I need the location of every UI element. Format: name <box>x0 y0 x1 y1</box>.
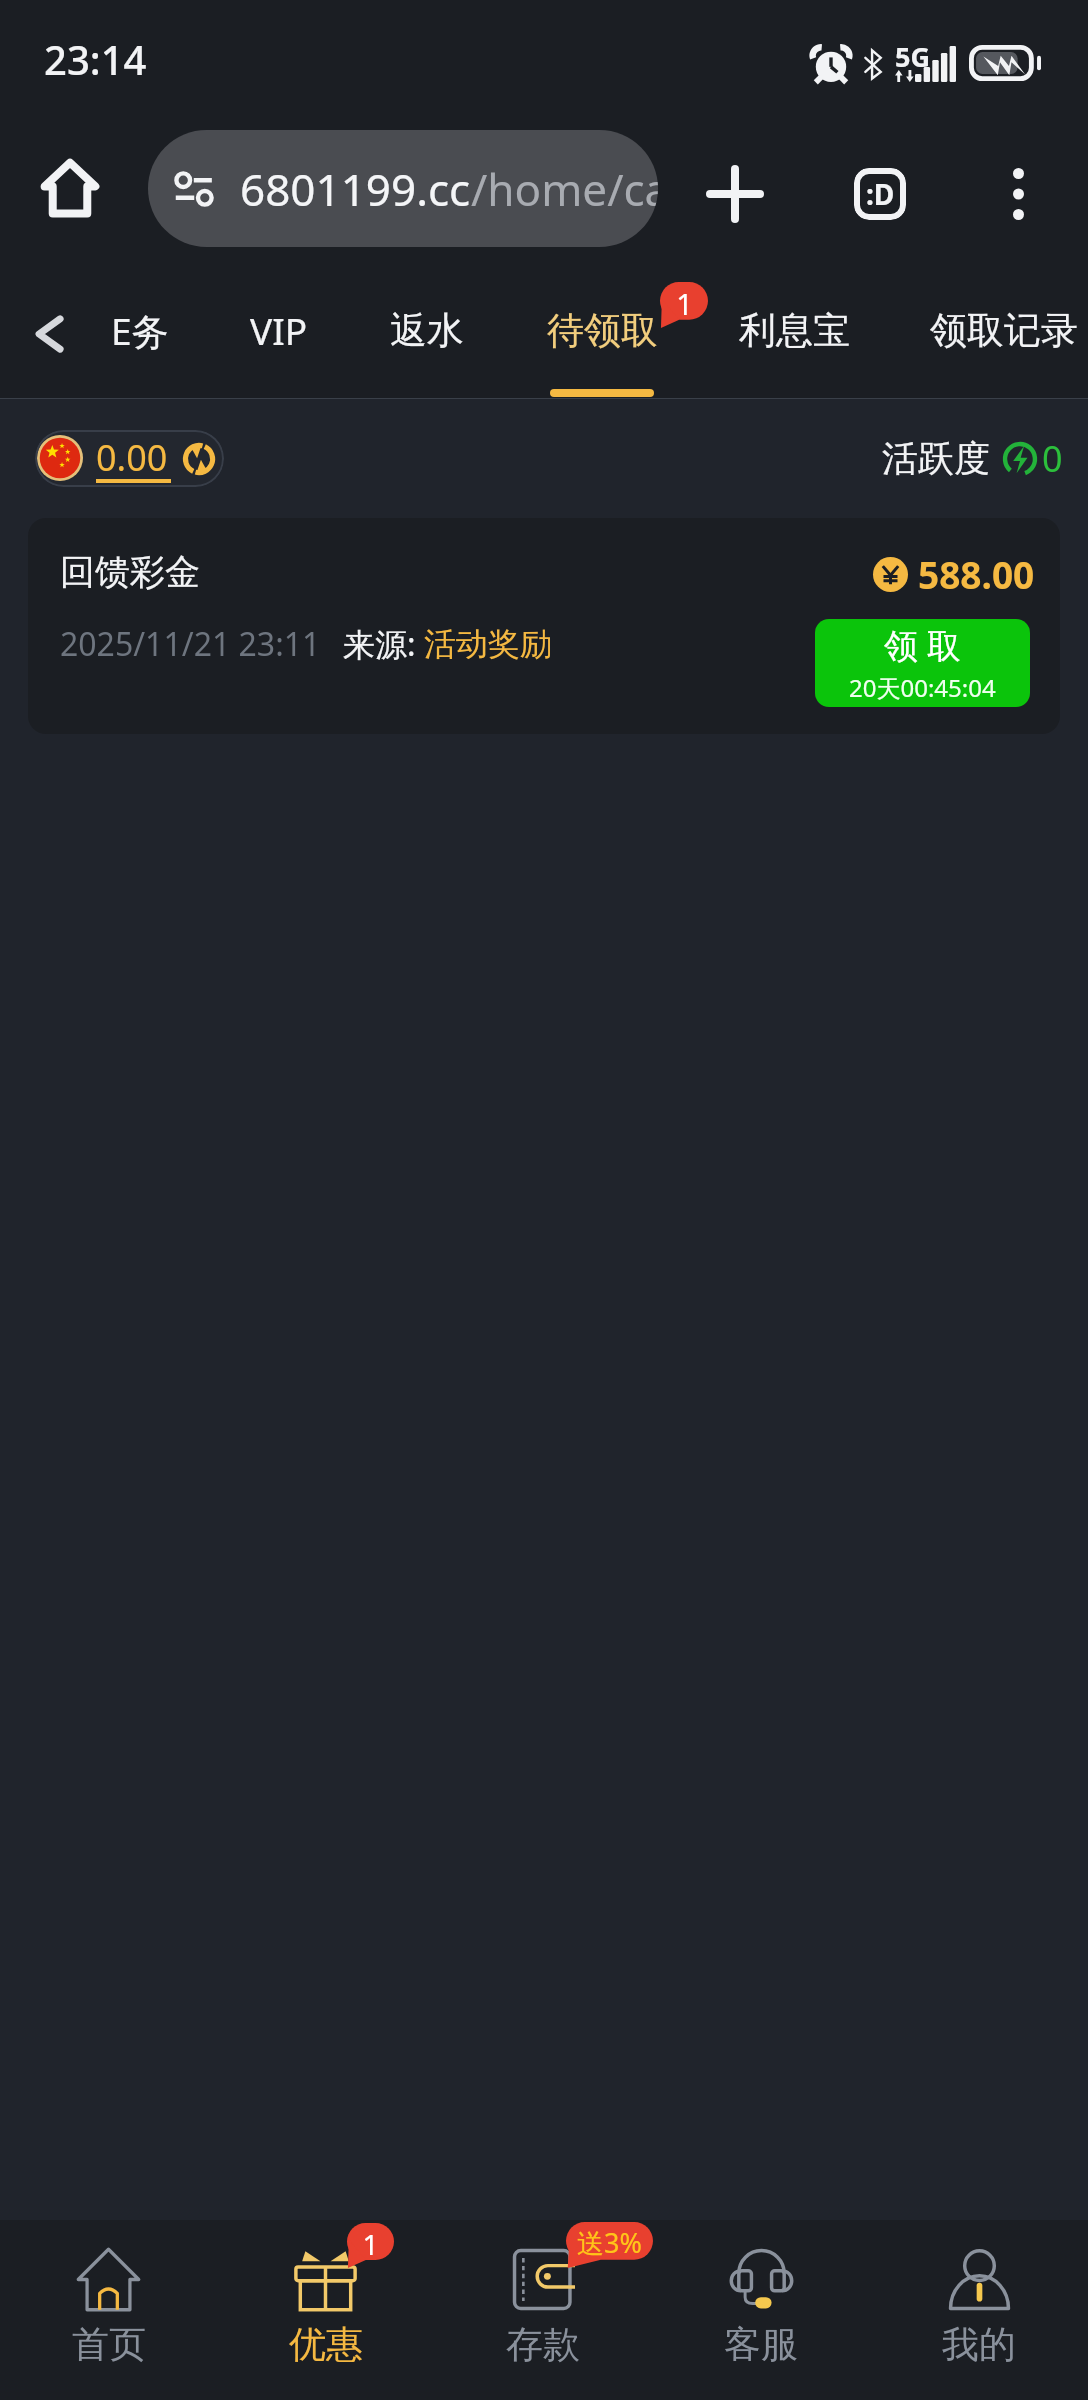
button[interactable]: 首页 <box>0 2220 217 2400</box>
staticText: 回馈彩金 <box>60 550 200 594</box>
staticText: 存款 <box>506 2321 580 2368</box>
staticText: 20天00:45:04 <box>849 671 996 704</box>
staticText: 0 <box>1042 434 1063 483</box>
button[interactable]: E务 <box>91 270 189 398</box>
button[interactable]: 活跃度 <box>870 430 1063 487</box>
staticText: 来源: <box>343 622 424 666</box>
button[interactable]: 领 取 <box>815 619 1030 707</box>
button[interactable]: 客服 <box>652 2220 870 2400</box>
staticText: 588.00 <box>918 549 1035 599</box>
staticText: 1 <box>362 2225 379 2263</box>
staticText: 领 取 <box>884 622 961 668</box>
staticText: 5G <box>895 38 930 75</box>
staticText: 活动奖励 <box>424 624 552 664</box>
staticText: 客服 <box>724 2321 798 2368</box>
button[interactable]: 利息宝 <box>724 270 864 398</box>
button[interactable]: New tab <box>675 146 795 242</box>
button[interactable]: Home <box>6 124 134 252</box>
staticText: 1 <box>676 284 693 323</box>
staticText: E务 <box>111 305 169 356</box>
button[interactable]: 回馈彩金 <box>28 518 1060 734</box>
button[interactable]: VIP <box>230 270 328 398</box>
button[interactable]: 领取记录 <box>917 270 1088 398</box>
staticText: 活跃度 <box>882 436 990 481</box>
button[interactable]: Back <box>2 270 98 398</box>
staticText: 利息宝 <box>739 307 850 354</box>
button[interactable]: 6801199.cc <box>148 130 658 247</box>
staticText: 送3% <box>577 2224 642 2261</box>
button[interactable]: 我的 <box>870 2220 1088 2400</box>
staticText: 2025/11/21 23:11 <box>60 622 321 666</box>
button[interactable]: 送3% <box>434 2220 652 2400</box>
staticText: 6801199.cc <box>240 159 471 219</box>
staticText: 23:14 <box>44 32 147 86</box>
staticText: 首页 <box>72 2321 146 2368</box>
button[interactable]: 返水 <box>373 270 481 398</box>
button[interactable]: 1 <box>217 2220 434 2400</box>
button[interactable]: More options <box>958 146 1078 242</box>
staticText: /home/ca <box>471 159 658 219</box>
button[interactable]: 0.00 <box>35 430 224 487</box>
staticText: 待领取 <box>547 307 658 354</box>
button[interactable]: Switch tabs <box>820 146 940 242</box>
staticText: VIP <box>250 305 308 355</box>
staticText: 0.00 <box>96 433 168 482</box>
staticText: 返水 <box>390 307 464 354</box>
staticText: 领取记录 <box>930 307 1078 354</box>
button[interactable]: 待领取 <box>532 270 672 398</box>
staticText: :D <box>866 175 895 213</box>
staticText: 我的 <box>942 2321 1016 2368</box>
staticText: 优惠 <box>289 2321 363 2368</box>
